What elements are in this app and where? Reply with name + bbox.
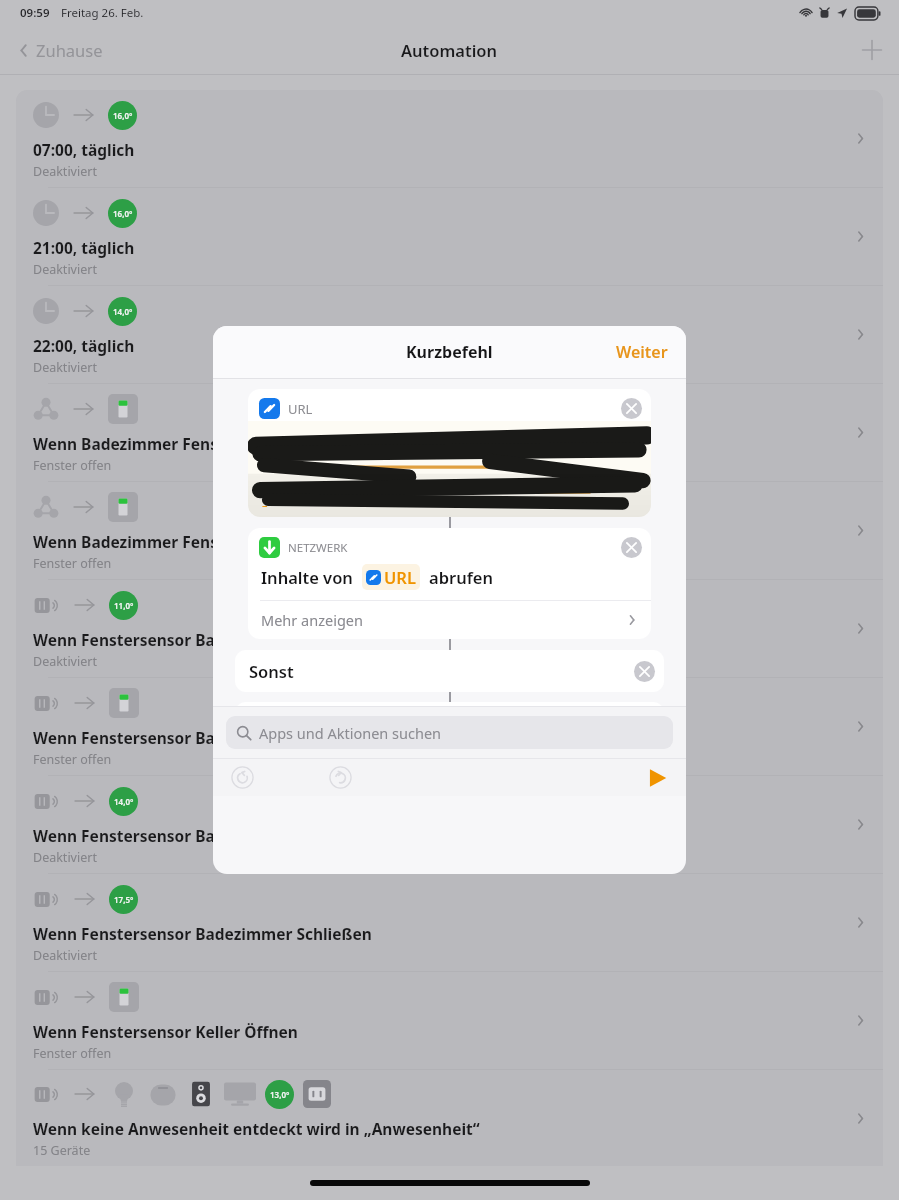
other: Entfernen — [621, 398, 642, 419]
button[interactable]: Apps und Aktionen suchen — [226, 716, 673, 749]
staticText: Wenn Fenstersensor Badezimmer Schließen — [33, 923, 372, 944]
button[interactable]: Widerrufen — [231, 766, 254, 789]
staticText: 09:59 — [20, 5, 50, 21]
staticText: Deaktiviert — [33, 947, 97, 964]
button[interactable]: Ende von „Wenn“ — [235, 702, 664, 744]
button[interactable]: Ausführen — [646, 767, 686, 789]
staticText: Wenn Fenstersensor Badezimmer Öffnen — [33, 629, 351, 650]
button[interactable]: Sonst — [235, 650, 664, 692]
staticText: Fenster offen — [33, 457, 112, 474]
staticText: 11,0° — [114, 600, 134, 611]
staticText: Fenster offen — [33, 751, 112, 768]
staticText: Wenn Badezimmer Fenstersensor Öffnen — [33, 433, 351, 454]
button[interactable]: 14,0° — [16, 285, 883, 383]
staticText: Deaktiviert — [33, 653, 97, 670]
staticText: 07:00, täglich — [33, 139, 135, 160]
staticText: Wenn Fenstersensor Badezimmer Öffnen — [33, 727, 351, 748]
staticText: Fenster offen — [33, 1045, 112, 1062]
button[interactable]: Mehr anzeigen — [248, 601, 651, 639]
button[interactable]: URL — [248, 389, 651, 517]
button[interactable]: 16,0° — [16, 90, 883, 187]
staticText: 15 Geräte — [33, 1142, 91, 1159]
staticText: Wenn keine Anwesenheit entdeckt wird in … — [33, 1118, 480, 1139]
staticText: 13,0° — [270, 1089, 290, 1100]
staticText: Automation — [401, 39, 498, 61]
button[interactable]: Wenn Fenstersensor Badezimmer Öffnen — [16, 677, 883, 775]
staticText: 16,0° — [113, 208, 133, 219]
staticText: Mehr anzeigen — [261, 610, 363, 630]
staticText: Wenn Fenstersensor Keller Öffnen — [33, 1021, 298, 1042]
staticText: Kurzbefehl — [406, 341, 493, 363]
button[interactable]: Wenn Fenstersensor Keller Öffnen — [16, 971, 883, 1069]
staticText: 22:00, täglich — [33, 335, 135, 356]
button[interactable]: 17,5° — [16, 873, 883, 971]
staticText: abrufen — [429, 566, 493, 588]
button[interactable]: Wiederholen — [329, 766, 352, 789]
staticText: URL — [384, 566, 416, 588]
staticText: 16,0° — [113, 110, 133, 121]
other: Entfernen — [634, 661, 655, 682]
button[interactable]: Hinzufügen — [845, 31, 899, 69]
staticText: Sonst — [249, 660, 294, 682]
button[interactable]: Weiter — [598, 331, 686, 373]
button[interactable]: Wenn Badezimmer Fenstersensor Öffnen — [16, 383, 883, 481]
button[interactable]: Wenn Badezimmer Fenstersensor Öffnen — [16, 481, 883, 579]
staticText: URL — [288, 400, 313, 418]
button[interactable]: 11,0° — [16, 579, 883, 677]
staticText: – — [262, 497, 268, 512]
button[interactable]: 13,0° — [16, 1069, 883, 1166]
other: Entfernen — [621, 537, 642, 558]
staticText: Apps und Aktionen suchen — [259, 723, 442, 743]
staticText: NETZWERK — [288, 540, 348, 556]
staticText: Deaktiviert — [33, 849, 97, 866]
staticText: Inhalte von — [261, 566, 353, 588]
staticText: Wenn Badezimmer Fenstersensor Öffnen — [33, 531, 351, 552]
staticText: Deaktiviert — [33, 359, 97, 376]
staticText: Weiter — [616, 341, 668, 363]
staticText: 14,0° — [113, 306, 133, 317]
other: Ausführen — [646, 767, 668, 789]
staticText: 17,5° — [114, 894, 134, 905]
staticText: 21:00, täglich — [33, 237, 135, 258]
staticText: 14,0° — [114, 796, 134, 807]
staticText: Deaktiviert — [33, 261, 97, 278]
staticText: Wenn Fenstersensor Badezimmer Öffnen — [33, 825, 351, 846]
staticText: Zuhause — [36, 39, 103, 61]
button[interactable]: Zuhause — [0, 33, 113, 67]
button[interactable]: NETZWERK — [248, 528, 651, 600]
staticText: Deaktiviert — [33, 163, 97, 180]
staticText: Ende von „Wenn“ — [249, 712, 387, 734]
staticText: Fenster offen — [33, 555, 112, 572]
staticText: Freitag 26. Feb. — [61, 5, 144, 21]
button[interactable]: 16,0° — [16, 187, 883, 285]
button[interactable]: 14,0° — [16, 775, 883, 873]
